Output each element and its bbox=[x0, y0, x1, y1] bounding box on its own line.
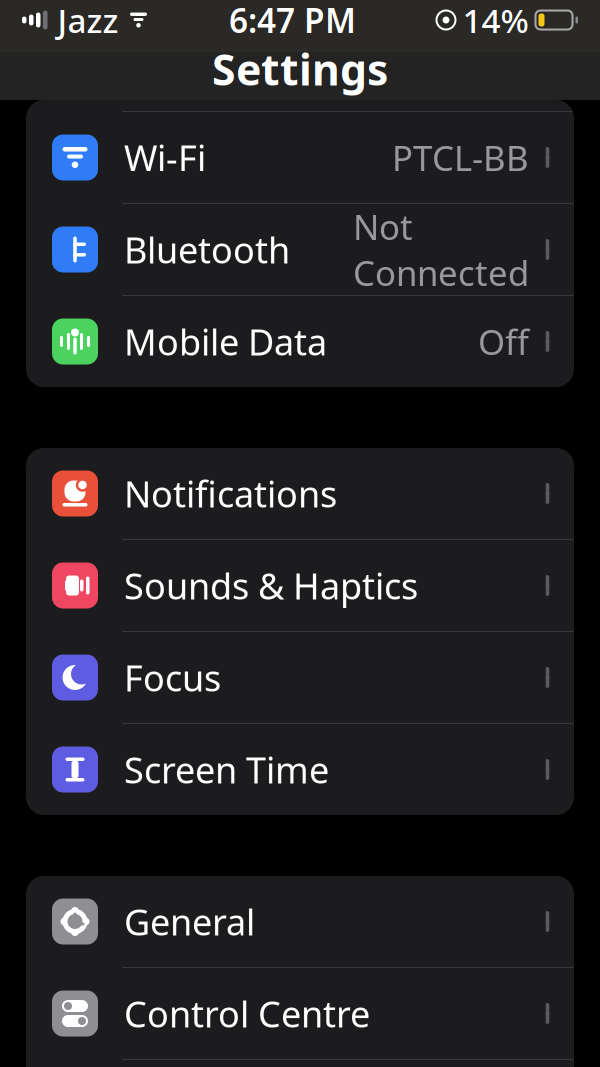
staticText: Wi-Fi bbox=[124, 134, 206, 181]
button[interactable]: Focus bbox=[26, 632, 574, 724]
staticText: Settings bbox=[212, 41, 388, 97]
button[interactable]: Screen Time bbox=[26, 724, 574, 815]
staticText: Focus bbox=[124, 654, 221, 701]
staticText: Control Centre bbox=[124, 990, 370, 1037]
staticText: Jazz bbox=[57, 0, 118, 42]
staticText: Bluetooth bbox=[124, 226, 290, 273]
staticText: General bbox=[124, 898, 255, 945]
staticText: PTCL-BB bbox=[392, 134, 529, 180]
staticText: Not Connected bbox=[353, 203, 529, 296]
button[interactable]: Settings bbox=[0, 40, 600, 98]
staticText: Off bbox=[478, 318, 529, 364]
staticText: 14% bbox=[462, 0, 528, 42]
button[interactable]: Wi-Fi bbox=[26, 112, 574, 204]
button[interactable]: Mobile Data bbox=[26, 296, 574, 387]
staticText: 6:47 PM bbox=[229, 0, 356, 42]
staticText: Sounds & Haptics bbox=[124, 562, 418, 609]
staticText: Screen Time bbox=[124, 746, 329, 793]
button[interactable]: Control Centre bbox=[26, 968, 574, 1060]
button[interactable]: General bbox=[26, 876, 574, 968]
button[interactable]: Bluetooth bbox=[26, 204, 574, 296]
button[interactable]: Notifications bbox=[26, 448, 574, 540]
staticText: Notifications bbox=[124, 470, 337, 517]
button[interactable]: Sounds & Haptics bbox=[26, 540, 574, 632]
staticText: Mobile Data bbox=[124, 318, 327, 365]
